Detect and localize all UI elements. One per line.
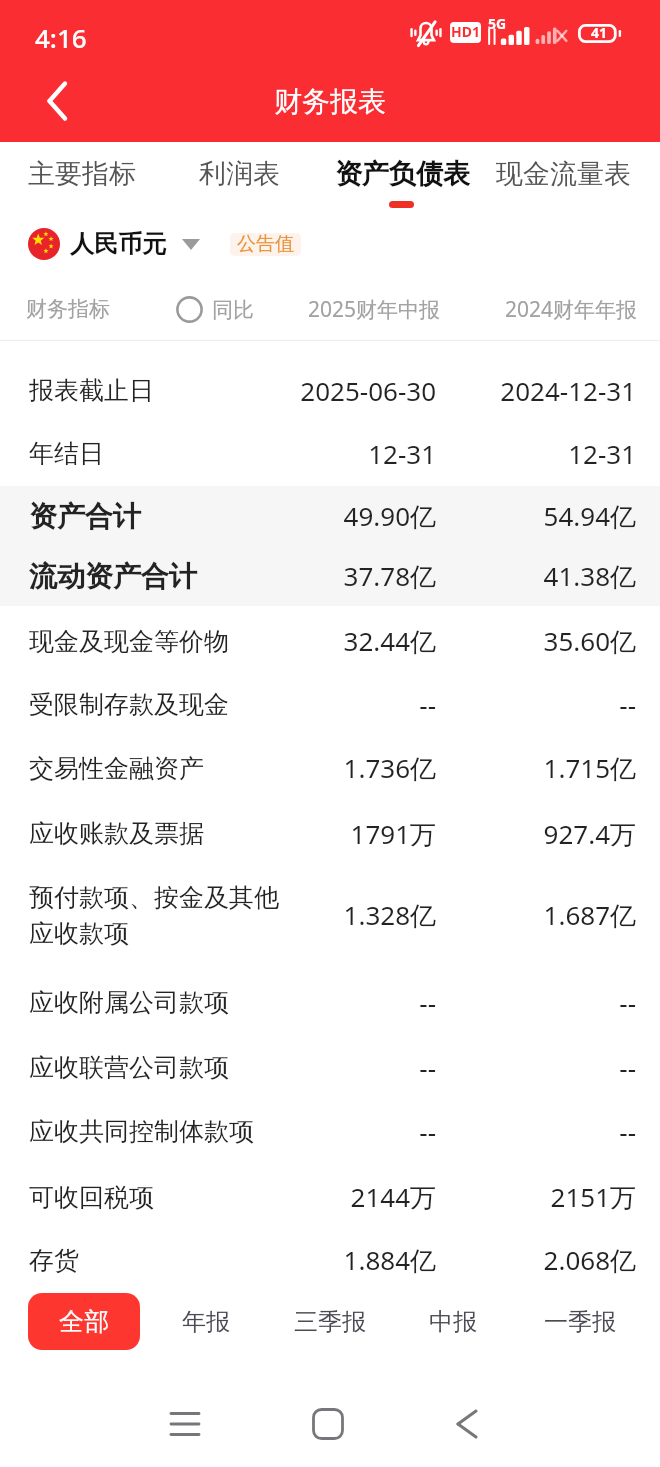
button[interactable]: 三季报 (274, 1293, 386, 1350)
button[interactable]: Back (423, 1380, 511, 1467)
button[interactable]: Recent apps (141, 1380, 229, 1467)
button[interactable]: 中报 (397, 1293, 509, 1350)
staticText: 财务报表 (274, 84, 386, 119)
staticText: 交易性金融资产 (29, 753, 319, 784)
staticText: 12-31 (436, 436, 636, 471)
staticText: 1791万 (250, 816, 436, 852)
staticText: 927.4万 (436, 816, 636, 852)
button[interactable]: 资产合计 (0, 486, 660, 546)
button[interactable]: 存货 (0, 1228, 660, 1292)
staticText: 年报 (182, 1307, 230, 1337)
button[interactable]: 应收共同控制体款项 (0, 1099, 660, 1163)
staticText: 2151万 (436, 1179, 636, 1215)
button[interactable]: 全部 (28, 1293, 140, 1350)
staticText: 报表截止日 (29, 375, 319, 406)
staticText: 一季报 (544, 1307, 616, 1337)
staticText: 1.328亿 (250, 897, 436, 933)
staticText: 49.90亿 (250, 498, 436, 534)
staticText: 存货 (29, 1245, 319, 1276)
button[interactable]: 资产负债表 (327, 147, 477, 201)
staticText: 公告值 (237, 233, 294, 255)
button[interactable]: 一季报 (524, 1293, 636, 1350)
staticText: 现金流量表 (496, 157, 631, 191)
staticText: 人民币元 (70, 229, 166, 259)
staticText: 利润表 (199, 157, 280, 191)
button[interactable]: 利润表 (164, 147, 314, 201)
staticText: 应收附属公司款项 (29, 987, 319, 1018)
staticText: 2144万 (250, 1179, 436, 1215)
button[interactable]: 年报 (150, 1293, 262, 1350)
button[interactable]: 现金流量表 (488, 147, 638, 201)
button[interactable]: 公告值 (230, 233, 301, 256)
staticText: -- (436, 687, 636, 722)
staticText: -- (250, 985, 436, 1020)
staticText: 同比 (212, 297, 254, 323)
staticText: 2.068亿 (436, 1242, 636, 1278)
staticText: 2024财年年报 (505, 295, 638, 324)
button[interactable]: 预付款项、按金及其他 应收款项 (0, 862, 660, 968)
staticText: 37.78亿 (250, 558, 436, 594)
staticText: 12-31 (250, 436, 436, 471)
button[interactable]: 现金及现金等价物 (0, 609, 660, 673)
staticText: 1.715亿 (436, 750, 636, 786)
staticText: 2025财年中报 (308, 295, 441, 324)
staticText: 资产合计 (29, 499, 319, 534)
button[interactable]: 应收联营公司款项 (0, 1035, 660, 1099)
staticText: 应收账款及票据 (29, 818, 319, 849)
button[interactable]: 流动资产合计 (0, 546, 660, 606)
staticText: 5G (488, 14, 507, 33)
staticText: HD1 (451, 22, 480, 41)
staticText: 32.44亿 (250, 623, 436, 659)
button[interactable]: 交易性金融资产 (0, 736, 660, 800)
staticText: 54.94亿 (436, 498, 636, 534)
staticText: -- (250, 1050, 436, 1085)
staticText: 全部 (59, 1306, 109, 1337)
staticText: -- (436, 1114, 636, 1149)
button[interactable]: 受限制存款及现金 (0, 673, 660, 736)
staticText: 41 (591, 23, 608, 42)
staticText: 资产负债表 (335, 157, 470, 191)
staticText: 2025-06-30 (250, 373, 436, 408)
staticText: 1.884亿 (250, 1242, 436, 1278)
staticText: 2024-12-31 (436, 373, 636, 408)
staticText: 年结日 (29, 438, 319, 469)
button[interactable]: 可收回税项 (0, 1165, 660, 1229)
staticText: -- (250, 1114, 436, 1149)
button[interactable]: 人民币元 (66, 226, 206, 262)
staticText: 流动资产合计 (29, 559, 319, 594)
staticText: 三季报 (294, 1307, 366, 1337)
staticText: 1.736亿 (250, 750, 436, 786)
staticText: -- (436, 1050, 636, 1085)
staticText: 受限制存款及现金 (29, 689, 319, 720)
button[interactable]: 应收附属公司款项 (0, 970, 660, 1034)
staticText: 1.687亿 (436, 897, 636, 933)
staticText: 财务指标 (26, 296, 110, 322)
button[interactable]: 主要指标 (7, 147, 157, 201)
staticText: -- (250, 687, 436, 722)
button[interactable]: 年结日 (0, 422, 660, 484)
staticText: 41.38亿 (436, 558, 636, 594)
staticText: -- (436, 985, 636, 1020)
button[interactable]: Back (14, 62, 98, 140)
staticText: 应收联营公司款项 (29, 1052, 319, 1083)
staticText: 35.60亿 (436, 623, 636, 659)
button[interactable]: Home (284, 1380, 372, 1467)
button[interactable]: 报表截止日 (0, 358, 660, 422)
staticText: 现金及现金等价物 (29, 626, 319, 657)
staticText: 中报 (429, 1307, 477, 1337)
button[interactable]: 应收账款及票据 (0, 801, 660, 866)
staticText: 4:16 (35, 20, 87, 55)
staticText: 应收共同控制体款项 (29, 1116, 319, 1147)
staticText: 主要指标 (28, 157, 136, 191)
staticText: 预付款项、按金及其他 应收款项 (29, 882, 319, 949)
staticText: 可收回税项 (29, 1182, 319, 1213)
